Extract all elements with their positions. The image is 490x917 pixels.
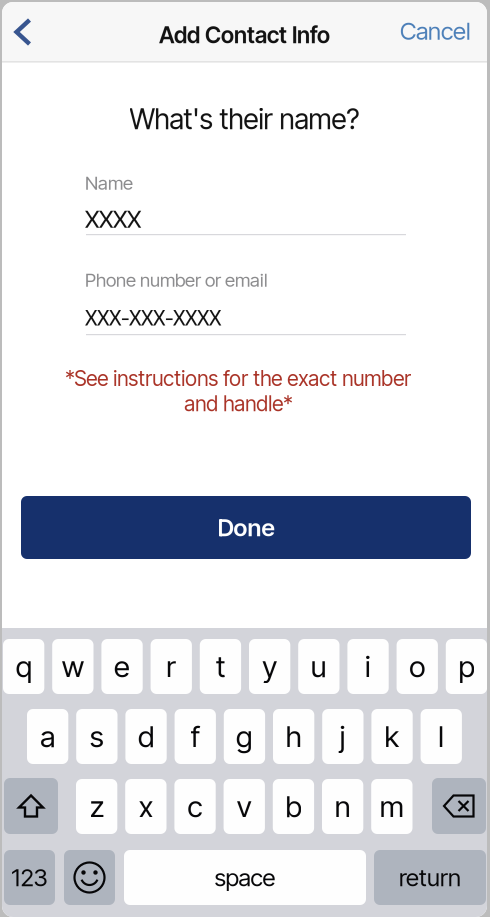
staticText: j xyxy=(340,719,346,754)
button[interactable]: p xyxy=(446,639,487,694)
staticText: Done xyxy=(217,513,274,542)
button[interactable]: Cancel xyxy=(371,17,471,45)
staticText: *See instructions for the exact number a… xyxy=(65,366,411,416)
button[interactable]: j xyxy=(322,709,363,764)
staticText: p xyxy=(458,649,474,684)
staticText: m xyxy=(380,789,404,824)
button[interactable]: o xyxy=(397,639,438,694)
staticText: Add Contact Info xyxy=(159,21,330,49)
staticText: v xyxy=(237,789,252,824)
staticText: x xyxy=(139,789,153,824)
button[interactable]: c xyxy=(174,779,216,834)
button[interactable]: Delete xyxy=(432,778,486,834)
staticText: u xyxy=(311,649,327,684)
staticText: XXXX xyxy=(85,204,141,233)
staticText: z xyxy=(90,789,104,824)
button[interactable]: h xyxy=(273,709,314,764)
staticText: return xyxy=(399,863,461,892)
staticText: t xyxy=(216,649,225,684)
button[interactable]: y xyxy=(249,639,290,694)
button[interactable]: Shift xyxy=(4,778,58,834)
staticText: Phone number or email xyxy=(85,269,268,291)
staticText: Name xyxy=(85,172,133,194)
button[interactable]: e xyxy=(101,639,143,694)
staticText: XXX-XXX-XXXX xyxy=(85,305,221,331)
button[interactable]: Emoji keyboard xyxy=(64,850,115,905)
button[interactable]: r xyxy=(151,639,192,694)
button[interactable]: x xyxy=(125,779,166,834)
button[interactable]: v xyxy=(224,779,265,834)
staticText: e xyxy=(114,649,130,684)
staticText: b xyxy=(285,789,301,824)
staticText: i xyxy=(365,649,371,684)
button[interactable]: i xyxy=(347,639,389,694)
button[interactable]: q xyxy=(3,639,44,694)
staticText: g xyxy=(236,719,253,754)
button[interactable]: z xyxy=(76,779,117,834)
button[interactable]: 123 xyxy=(4,850,55,905)
button[interactable]: return xyxy=(374,850,486,905)
staticText: a xyxy=(40,719,55,754)
staticText: What's their name? xyxy=(129,102,359,136)
staticText: f xyxy=(191,719,200,754)
button[interactable]: m xyxy=(371,779,412,834)
button[interactable]: g xyxy=(224,709,265,764)
staticText: o xyxy=(409,649,425,684)
staticText: space xyxy=(214,863,275,892)
button[interactable]: d xyxy=(125,709,167,764)
staticText: Cancel xyxy=(400,16,471,45)
staticText: q xyxy=(16,649,32,684)
button[interactable]: t xyxy=(200,639,241,694)
button[interactable]: f xyxy=(175,709,216,764)
staticText: w xyxy=(62,649,84,684)
staticText: h xyxy=(286,719,302,754)
staticText: n xyxy=(335,789,351,824)
button[interactable]: Back xyxy=(0,10,46,54)
button[interactable]: n xyxy=(322,779,363,834)
staticText: s xyxy=(90,719,104,754)
staticText: y xyxy=(262,649,277,684)
button[interactable]: Done xyxy=(21,496,471,559)
staticText: k xyxy=(384,719,399,754)
staticText: c xyxy=(187,789,202,824)
button[interactable]: s xyxy=(76,709,117,764)
button[interactable]: space xyxy=(124,850,366,905)
staticText: r xyxy=(166,649,176,684)
staticText: d xyxy=(138,719,154,754)
button[interactable]: u xyxy=(298,639,339,694)
staticText: 123 xyxy=(11,863,47,892)
button[interactable]: a xyxy=(27,709,68,764)
staticText: l xyxy=(438,719,444,754)
button[interactable]: k xyxy=(371,709,413,764)
button[interactable]: b xyxy=(273,779,314,834)
button[interactable]: l xyxy=(421,709,462,764)
button[interactable]: w xyxy=(52,639,93,694)
